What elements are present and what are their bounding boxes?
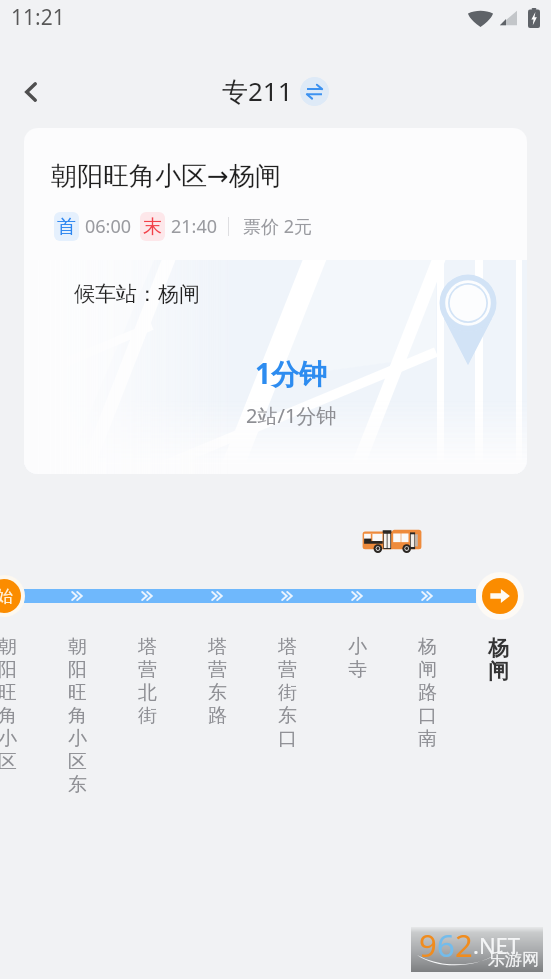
staticText: 末 (143, 215, 162, 239)
staticText: 朝 阳 旺 角 小 区 东 (68, 635, 87, 797)
button[interactable]: Switch direction (300, 77, 329, 106)
staticText: 塔 营 东 路 (208, 635, 227, 728)
button[interactable]: Start station (0, 579, 21, 613)
button[interactable]: 朝阳旺角小区→杨闸 (24, 128, 527, 474)
staticText: 始 (0, 586, 13, 607)
staticText: 塔 营 街 东 口 (278, 635, 297, 751)
staticText: 小 寺 (348, 635, 367, 682)
staticText: 11:21 (11, 3, 65, 32)
staticText: 6 (437, 924, 455, 966)
staticText: 杨 闸 路 口 南 (418, 635, 437, 751)
staticText: 06:00 (85, 214, 132, 239)
staticText: 朝阳旺角小区→杨闸 (51, 160, 281, 193)
button[interactable]: Destination (482, 578, 518, 614)
staticText: 朝 阳 旺 角 小 区 (0, 635, 17, 774)
staticText: 2 (455, 924, 473, 966)
staticText: 乐游网 (488, 949, 539, 970)
staticText: 2站/1分钟 (246, 402, 337, 429)
staticText: 1分钟 (255, 354, 328, 392)
staticText: .NET (473, 930, 521, 960)
staticText: 候车站：杨闸 (74, 281, 200, 307)
staticText: 杨 闸 (488, 635, 509, 684)
staticText: 塔 营 北 街 (138, 635, 157, 728)
staticText: 21:40 (171, 214, 218, 239)
staticText: 票价 2元 (243, 214, 312, 239)
button[interactable]: Back (6, 68, 54, 116)
staticText: 9 (419, 924, 437, 966)
staticText: 专211 (222, 73, 293, 109)
staticText: 首 (57, 215, 76, 239)
